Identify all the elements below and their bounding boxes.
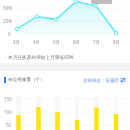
staticText: 单位维修量（个） bbox=[8, 77, 45, 83]
staticText: 本月任务及时率较上月降低60% bbox=[8, 54, 74, 60]
staticText: 100 bbox=[4, 109, 12, 115]
staticText: 25% bbox=[3, 18, 12, 24]
staticText: 7月 bbox=[93, 39, 101, 45]
staticText: 8月 bbox=[113, 39, 121, 45]
staticText: 0 bbox=[8, 31, 11, 37]
staticText: 4月 bbox=[33, 39, 41, 45]
button[interactable]: 本月任务及时率较上月降低60% bbox=[0, 51, 130, 63]
staticText: 3月 bbox=[13, 39, 21, 45]
staticText: 5月 bbox=[53, 39, 61, 45]
staticText: 50% bbox=[3, 5, 12, 11]
staticText: 当前单位：安泰区 bbox=[83, 78, 119, 84]
button[interactable]: 切换单位 bbox=[83, 77, 126, 84]
staticText: 50 bbox=[6, 122, 12, 128]
staticText: 150 bbox=[4, 96, 12, 102]
staticText: 6月 bbox=[73, 39, 81, 45]
